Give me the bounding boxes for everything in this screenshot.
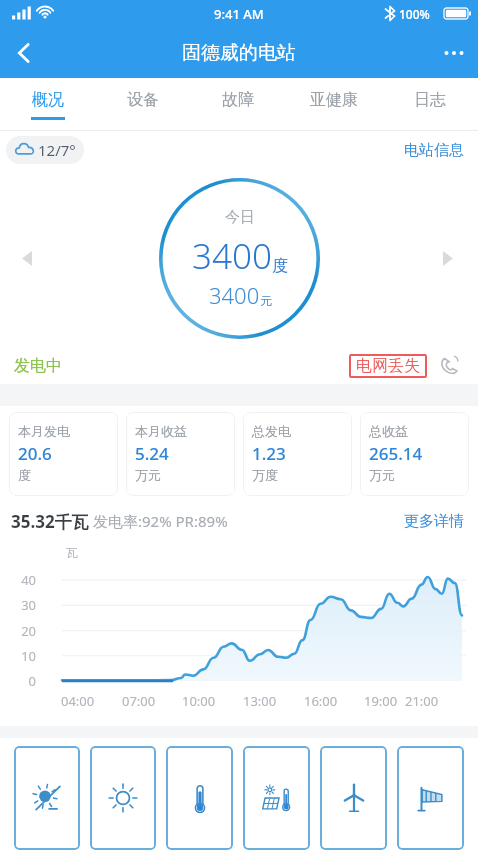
staticText: 265.14 bbox=[369, 442, 423, 465]
staticText: 瓦 bbox=[66, 545, 78, 560]
button[interactable]: 电站信息 bbox=[404, 141, 464, 160]
button[interactable]: Ambient temperature bbox=[166, 746, 233, 850]
staticText: 度 bbox=[272, 256, 288, 276]
staticText: 万元 bbox=[135, 467, 161, 483]
staticText: 万度 bbox=[252, 467, 278, 483]
staticText: 20 bbox=[0, 622, 36, 640]
button[interactable]: 亚健康 bbox=[286, 78, 382, 131]
staticText: 21:00 bbox=[405, 692, 439, 710]
staticText: 日志 bbox=[414, 90, 446, 110]
staticText: 设备 bbox=[127, 90, 159, 110]
button[interactable]: 概况 bbox=[0, 78, 95, 131]
staticText: 16:00 bbox=[304, 692, 338, 710]
button[interactable]: 总发电 bbox=[243, 412, 352, 496]
staticText: 本月收益 bbox=[135, 423, 187, 439]
staticText: 19:00 bbox=[364, 692, 398, 710]
button[interactable]: 今日 bbox=[158, 177, 321, 340]
staticText: 13:00 bbox=[243, 692, 277, 710]
staticText: 概况 bbox=[32, 90, 64, 110]
button[interactable]: Wind turbine bbox=[320, 746, 387, 850]
staticText: 10:00 bbox=[182, 692, 216, 710]
staticText: 35.32千瓦 bbox=[11, 510, 89, 533]
staticText: 本月发电 bbox=[18, 423, 70, 439]
staticText: 0 bbox=[0, 672, 36, 690]
button[interactable]: 设备 bbox=[95, 78, 190, 131]
button[interactable]: Irradiance bbox=[90, 746, 156, 850]
staticText: 度 bbox=[18, 467, 31, 483]
staticText: 今日 bbox=[225, 208, 255, 227]
button[interactable]: Next day bbox=[430, 241, 464, 275]
staticText: 更多详情 bbox=[404, 512, 464, 531]
staticText: 故障 bbox=[222, 90, 254, 110]
staticText: 100% bbox=[399, 6, 430, 22]
staticText: 总收益 bbox=[369, 423, 408, 439]
button[interactable]: 本月发电 bbox=[9, 412, 118, 496]
button[interactable]: 日志 bbox=[382, 78, 478, 131]
button[interactable]: Back bbox=[0, 29, 48, 77]
staticText: 10 bbox=[0, 647, 36, 665]
button[interactable]: 故障 bbox=[190, 78, 286, 131]
staticText: 12/7° bbox=[38, 140, 76, 160]
staticText: 总发电 bbox=[252, 423, 291, 439]
staticText: 发电中 bbox=[14, 356, 62, 376]
staticText: 电站信息 bbox=[404, 141, 464, 160]
staticText: 发电率:92% PR:89% bbox=[93, 511, 228, 531]
staticText: 亚健康 bbox=[310, 90, 358, 110]
staticText: 电网丢失 bbox=[356, 356, 420, 376]
button[interactable]: 本月收益 bbox=[126, 412, 235, 496]
staticText: 3400 bbox=[209, 280, 260, 310]
button[interactable]: Daily irradiance bbox=[14, 746, 80, 850]
button[interactable]: 电网丢失 bbox=[349, 354, 427, 378]
staticText: 1.23 bbox=[252, 442, 286, 465]
button[interactable]: Module temperature bbox=[243, 746, 310, 850]
button[interactable]: Wind speed bbox=[397, 746, 464, 850]
staticText: 5.24 bbox=[135, 442, 169, 465]
button[interactable]: 更多详情 bbox=[404, 512, 464, 531]
staticText: 3400 bbox=[192, 232, 272, 280]
staticText: 万元 bbox=[369, 467, 395, 483]
button[interactable]: Previous day bbox=[10, 241, 44, 275]
staticText: 04:00 bbox=[61, 692, 95, 710]
staticText: 9:41 AM bbox=[214, 5, 264, 23]
staticText: 20.6 bbox=[18, 442, 52, 465]
button[interactable]: Call support bbox=[432, 349, 466, 383]
staticText: 固德威的电站 bbox=[182, 41, 296, 65]
button[interactable]: 总收益 bbox=[360, 412, 469, 496]
staticText: 07:00 bbox=[122, 692, 156, 710]
staticText: 元 bbox=[260, 293, 272, 308]
button[interactable]: 12/7° bbox=[6, 136, 84, 164]
staticText: 30 bbox=[0, 596, 36, 614]
button[interactable]: More options bbox=[430, 29, 478, 77]
button[interactable]: 发电中 bbox=[14, 356, 62, 376]
staticText: 40 bbox=[0, 571, 36, 589]
